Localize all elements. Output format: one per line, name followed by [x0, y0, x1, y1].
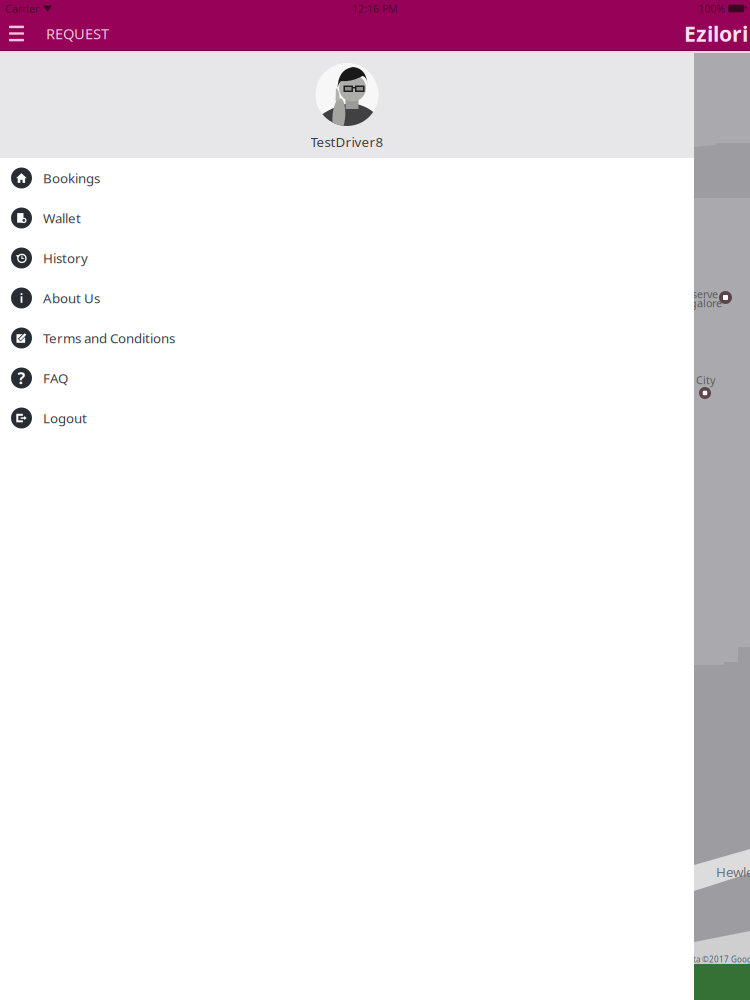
- staticText: TestDriver8: [310, 133, 383, 151]
- staticText: Terms and Conditions: [43, 329, 175, 347]
- staticText: Carrier: [5, 1, 39, 16]
- staticText: 12:16 PM: [352, 1, 398, 16]
- staticText: galore: [690, 296, 722, 310]
- staticText: Bookings: [43, 169, 100, 187]
- staticText: Wallet: [43, 209, 81, 227]
- staticText: Logout: [43, 409, 87, 427]
- staticText: History: [43, 249, 88, 267]
- staticText: 100%: [698, 1, 725, 16]
- staticText: Ezilori: [684, 19, 748, 48]
- button[interactable]: Wallet: [0, 198, 694, 238]
- button[interactable]: REQUEST: [33, 17, 115, 50]
- staticText: Hewle: [716, 863, 750, 881]
- button[interactable]: Menu: [0, 17, 33, 50]
- staticText: City: [696, 373, 715, 387]
- staticText: About Us: [43, 289, 100, 307]
- button[interactable]: Bookings: [0, 158, 694, 198]
- button[interactable]: Terms and Conditions: [0, 318, 694, 358]
- staticText: ?: [17, 367, 25, 389]
- staticText: ta ©2017 Google: [693, 954, 750, 965]
- button[interactable]: Logout: [0, 398, 694, 438]
- staticText: REQUEST: [46, 24, 109, 43]
- staticText: serve: [692, 287, 718, 301]
- button[interactable]: About Us: [0, 278, 694, 318]
- staticText: FAQ: [43, 369, 68, 387]
- button[interactable]: History: [0, 238, 694, 278]
- button[interactable]: ?: [0, 358, 694, 398]
